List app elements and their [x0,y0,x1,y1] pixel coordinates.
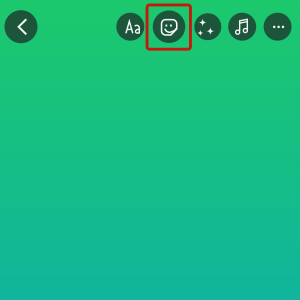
button[interactable]: Text [116,13,144,41]
button[interactable]: More options [264,13,292,41]
button[interactable]: Back [4,10,37,43]
button[interactable]: Music [228,13,256,41]
button[interactable]: Stickers [153,10,185,43]
button[interactable]: Effects [194,13,221,40]
